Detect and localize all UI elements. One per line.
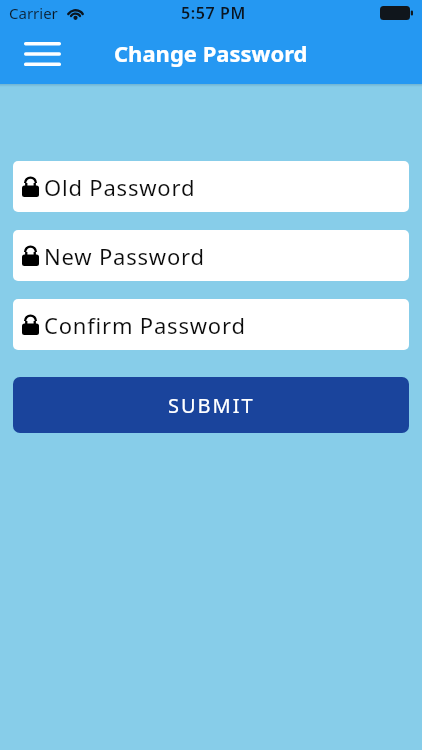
staticText: 5:57 PM (181, 2, 246, 24)
staticText: Old Password (44, 172, 196, 202)
button[interactable]: Old Password (13, 161, 409, 212)
button[interactable]: SUBMIT (13, 377, 409, 433)
button[interactable]: New Password (13, 230, 409, 281)
staticText: New Password (44, 241, 205, 271)
staticText: Carrier (9, 3, 58, 23)
staticText: Change Password (114, 38, 308, 68)
staticText: SUBMIT (168, 392, 255, 419)
button[interactable] (16, 32, 69, 76)
button[interactable]: Confirm Password (13, 299, 409, 350)
staticText: Confirm Password (44, 310, 246, 340)
